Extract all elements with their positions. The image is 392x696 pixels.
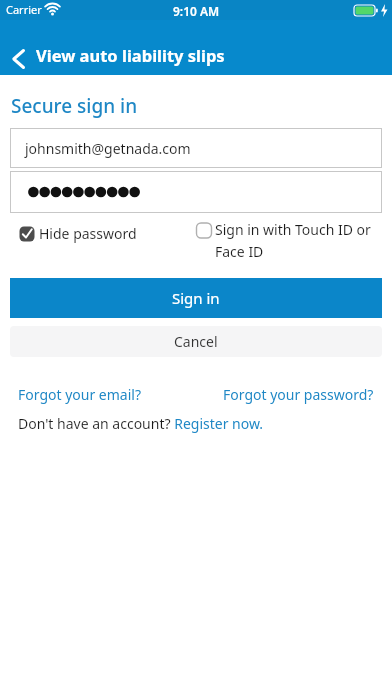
staticText: Carrier	[6, 2, 42, 17]
button[interactable]: Don't have an account? Register now.	[18, 414, 264, 433]
staticText: Sign in with Touch ID or Face ID	[215, 220, 371, 261]
staticText: johnsmith@getnada.com	[25, 139, 191, 158]
staticText: View auto liability slips	[36, 44, 225, 66]
button[interactable]: johnsmith@getnada.com	[10, 128, 382, 168]
staticText: Sign in	[172, 288, 220, 308]
button[interactable]: Sign in	[10, 278, 382, 318]
staticText: Hide password	[39, 224, 137, 243]
staticText: 9:10 AM	[173, 3, 220, 19]
button[interactable]: Sign in with Touch ID or Face ID	[196, 220, 371, 261]
staticText: Forgot your password?	[223, 385, 374, 404]
button[interactable]: Hide password	[19, 224, 137, 243]
staticText: Cancel	[174, 332, 218, 351]
button[interactable]	[10, 171, 382, 213]
staticText: Forgot your email?	[18, 385, 141, 404]
staticText: Secure sign in	[11, 93, 138, 119]
button[interactable]: Cancel	[10, 326, 382, 357]
button[interactable]: Forgot your email?	[18, 385, 141, 404]
button[interactable]: Forgot your password?	[223, 385, 374, 404]
staticText: Don't have an account? Register now.	[18, 414, 264, 433]
button[interactable]	[4, 44, 34, 74]
